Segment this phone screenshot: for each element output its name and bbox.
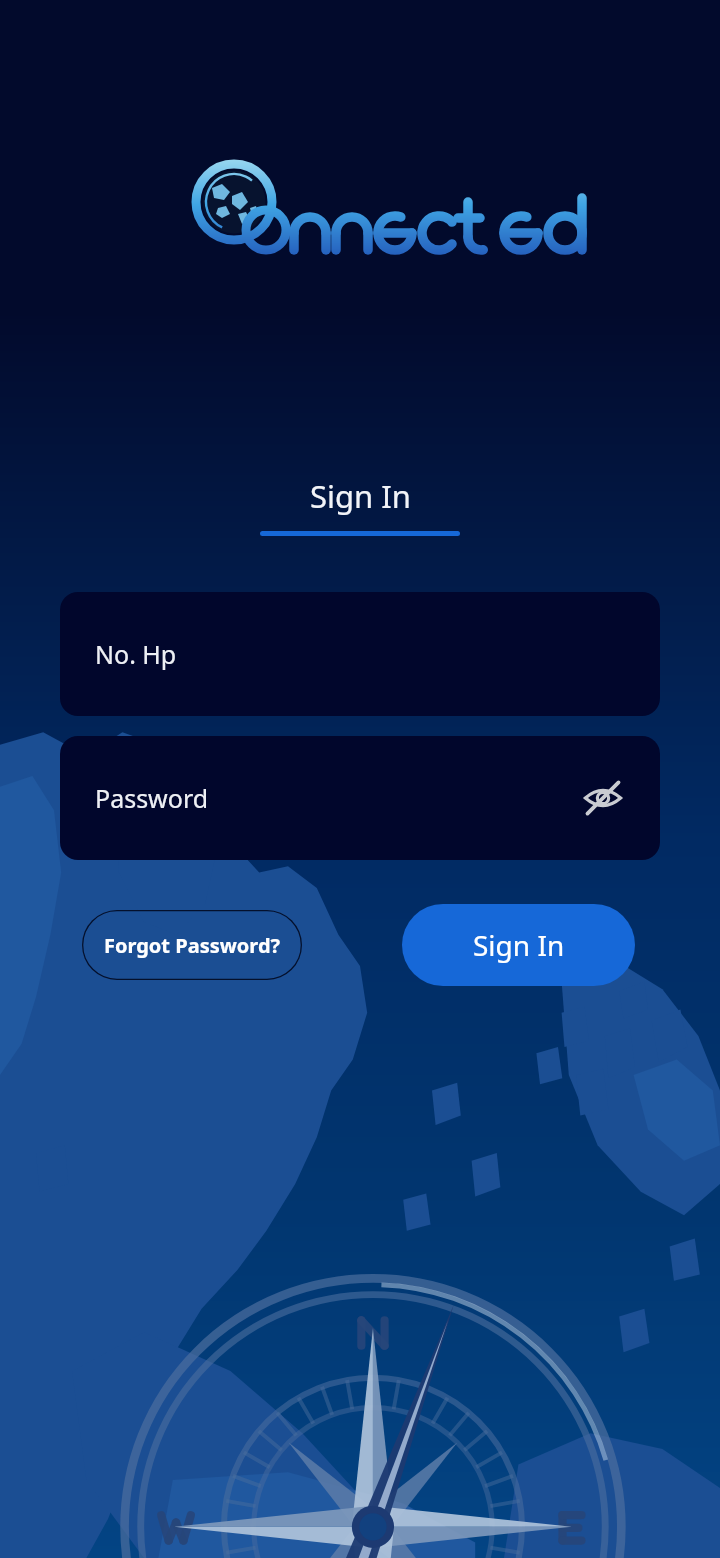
button[interactable]: Show password — [574, 769, 632, 827]
staticText: Sign In — [310, 475, 411, 517]
button[interactable]: Forgot Password? — [82, 910, 302, 980]
staticText: Sign In — [473, 926, 565, 964]
button[interactable]: Sign In — [402, 904, 635, 986]
button[interactable]: Password — [60, 736, 660, 860]
staticText: No. Hp — [95, 637, 177, 671]
button[interactable]: No. Hp — [60, 592, 660, 716]
staticText: Password — [95, 781, 209, 815]
staticText: Forgot Password? — [104, 932, 281, 959]
